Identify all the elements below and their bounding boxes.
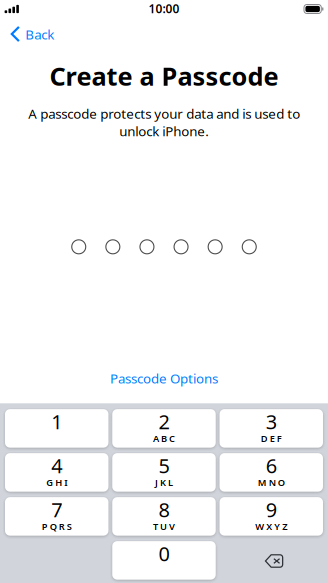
staticText: W X Y Z (255, 520, 287, 533)
staticText: 10:00 (148, 0, 179, 16)
staticText: 0 (158, 540, 169, 567)
button[interactable]: 4 (5, 453, 108, 492)
staticText: 8 (158, 496, 169, 523)
staticText: M N O (258, 476, 285, 489)
button[interactable]: 0 (112, 541, 216, 580)
button[interactable]: 1 (5, 409, 108, 448)
button[interactable]: 7 (5, 497, 108, 536)
staticText: 2 (158, 408, 169, 435)
staticText: 5 (158, 452, 169, 479)
staticText: T U V (153, 520, 175, 533)
button[interactable]: 8 (112, 497, 216, 536)
button[interactable]: 5 (112, 453, 216, 492)
button[interactable]: Delete (219, 541, 323, 580)
staticText: D E F (261, 432, 282, 445)
staticText: Back (25, 25, 54, 43)
staticText: A passcode protects your data and is use… (28, 105, 300, 140)
button[interactable]: 2 (112, 409, 216, 448)
staticText: P Q R S (42, 520, 72, 533)
staticText: 7 (51, 496, 62, 523)
staticText: Create a Passcode (49, 59, 278, 93)
staticText: 1 (51, 408, 62, 435)
staticText: A B C (153, 432, 175, 445)
staticText: G H I (46, 476, 67, 489)
button[interactable]: 9 (219, 497, 323, 536)
staticText: 9 (266, 496, 277, 523)
button[interactable]: 3 (219, 409, 323, 448)
staticText: 6 (266, 452, 277, 479)
button[interactable]: 6 (219, 453, 323, 492)
button[interactable]: Passcode Options (102, 365, 226, 392)
staticText: Passcode Options (110, 370, 218, 387)
button[interactable]: Back (0, 18, 64, 46)
staticText: 4 (51, 452, 62, 479)
staticText: 3 (266, 408, 277, 435)
staticText: J K L (155, 476, 173, 489)
